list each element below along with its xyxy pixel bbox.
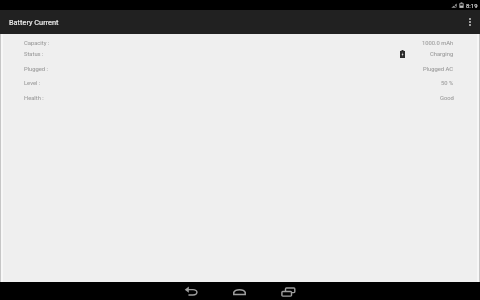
staticText: 1000.0 mAh bbox=[422, 40, 454, 47]
staticText: Plugged AC bbox=[423, 66, 454, 73]
staticText: Health : bbox=[24, 95, 44, 102]
staticText: Status : bbox=[24, 51, 44, 58]
staticText: 50 % bbox=[441, 80, 454, 87]
staticText: Capacity : bbox=[24, 40, 50, 47]
button[interactable]: Home bbox=[215, 282, 264, 300]
button[interactable]: More options bbox=[460, 10, 480, 34]
staticText: Good bbox=[440, 95, 454, 102]
staticText: 8:19 bbox=[466, 2, 478, 9]
staticText: Plugged : bbox=[24, 66, 48, 73]
staticText: Level : bbox=[24, 80, 41, 87]
staticText: Battery Current bbox=[9, 18, 59, 27]
staticText: Charging bbox=[430, 51, 454, 58]
button[interactable]: Recent apps bbox=[264, 282, 312, 300]
button[interactable]: Back bbox=[167, 282, 215, 300]
